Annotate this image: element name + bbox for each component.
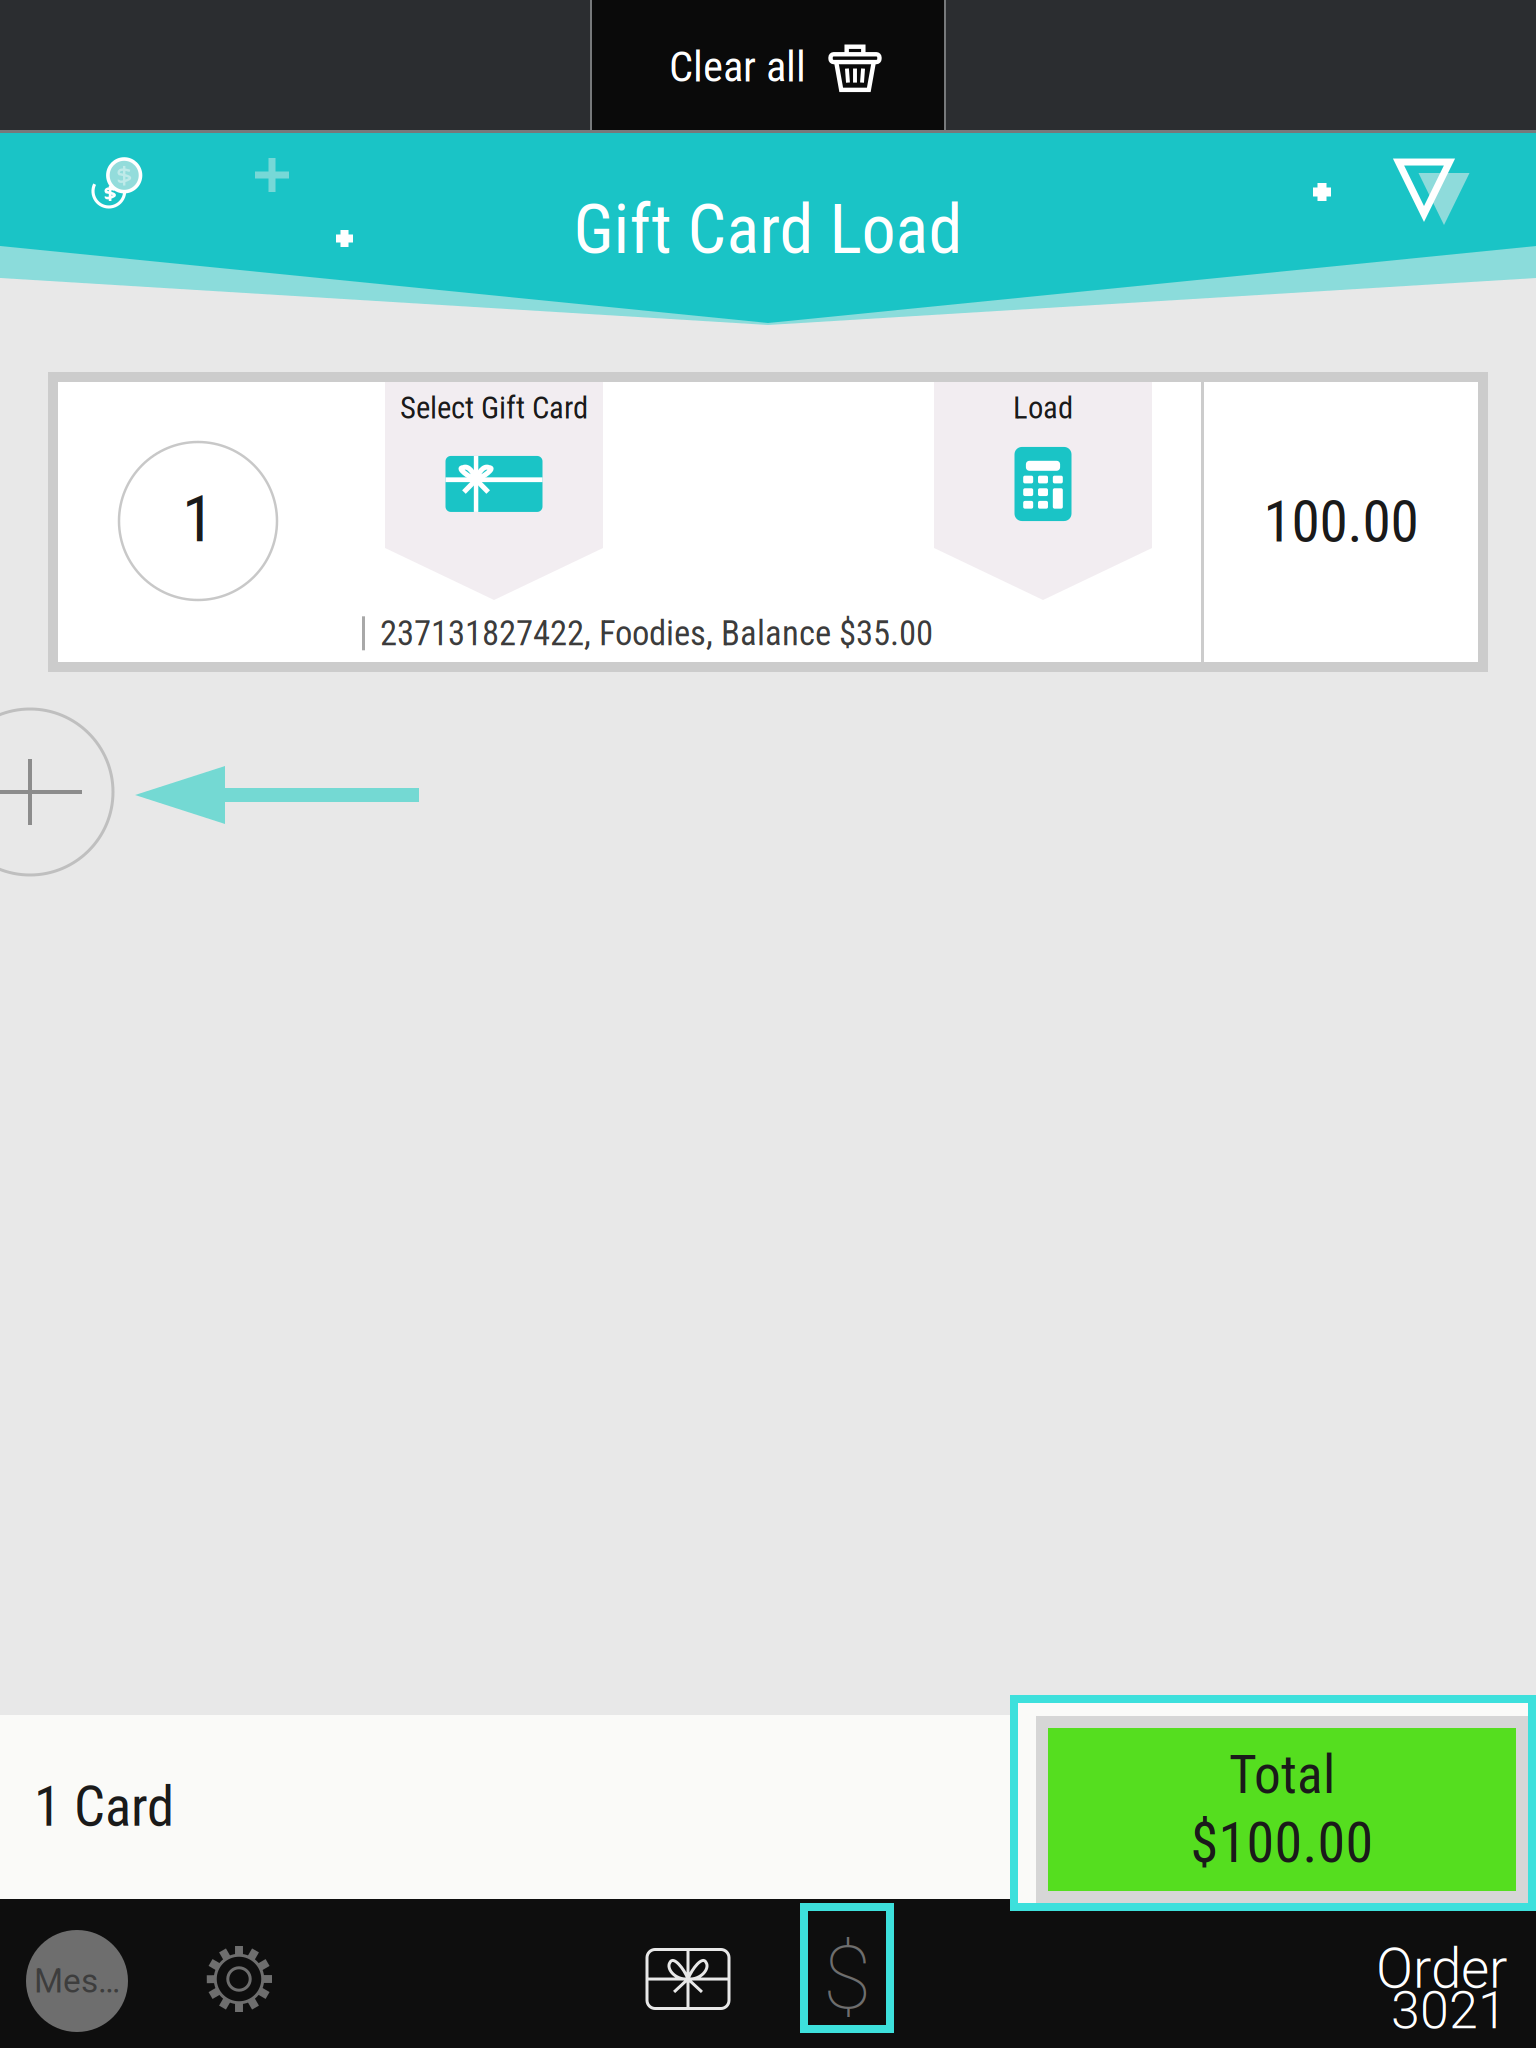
button[interactable]: Cash [73,139,161,227]
button[interactable]: Gift cards [633,1929,743,2029]
staticText: 1 Card [34,1775,174,1839]
staticText: 237131827422, Foodies, Balance $35.00 [380,613,933,654]
button[interactable]: Add item [0,709,113,875]
staticText: Order [1376,1937,1507,2001]
staticText: Mes… [34,1961,120,2001]
button[interactable]: Messages [26,1930,128,2032]
button[interactable]: Settings [193,1933,285,2025]
staticText: 100.00 [1263,488,1418,556]
button[interactable]: Select Gift Card [385,382,603,600]
button[interactable]: Total [1010,1695,1536,1911]
button[interactable]: Filter [1380,144,1468,232]
button[interactable]: Load [934,382,1152,600]
staticText: 3021 [1391,1980,1507,2041]
staticText: Gift Card Load [573,190,962,270]
staticText: 1 [182,481,214,557]
button[interactable]: Payment [800,1903,894,2033]
staticText: Clear all [669,42,806,92]
staticText: $100.00 [1190,1810,1373,1875]
button[interactable]: Order [1376,1899,1536,2041]
staticText: $ [823,1926,871,2029]
button[interactable]: Clear all [590,0,946,130]
staticText: Total [1229,1743,1335,1806]
staticText: Load [1013,390,1073,426]
staticText: Select Gift Card [400,390,588,426]
